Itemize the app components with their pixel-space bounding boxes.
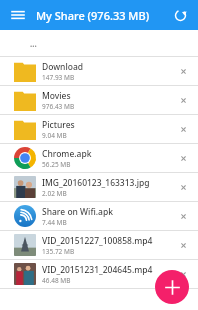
staticText: Share on Wifi.apk [42, 206, 113, 218]
staticText: 976.43 MB [42, 102, 75, 111]
button[interactable]: Open navigation drawer [6, 3, 30, 27]
staticText: 46.48 MB [42, 276, 71, 285]
staticText: Movies [42, 90, 71, 102]
staticText: Download [42, 61, 84, 73]
staticText: VID_20151227_100858.mp4 [42, 235, 153, 247]
button[interactable]: Remove Movies [171, 88, 195, 112]
staticText: 135.72 MB [42, 247, 75, 256]
staticText: 56.25 MB [42, 160, 71, 169]
button[interactable]: IMG_20160123_163313.jpg [0, 173, 198, 201]
button[interactable]: Remove Pictures [171, 117, 195, 141]
staticText: VID_20151231_204645.mp4 [42, 264, 153, 276]
button[interactable]: Remove Download [171, 59, 195, 83]
button[interactable]: Chrome.apk [0, 144, 198, 172]
button[interactable]: Share on Wifi.apk [0, 202, 198, 230]
staticText: 2.02 MB [42, 189, 67, 198]
button[interactable]: Refresh [166, 1, 194, 29]
button[interactable]: Remove VID_20151231_204645.mp4 [171, 262, 195, 286]
button[interactable]: Remove Share on Wifi.apk [171, 204, 195, 228]
button[interactable]: Remove VID_20151227_100858.mp4 [171, 233, 195, 257]
button[interactable]: Remove IMG_20160123_163313.jpg [171, 175, 195, 199]
staticText: 9.04 MB [42, 131, 67, 140]
button[interactable]: Movies [0, 86, 198, 114]
button[interactable]: Add file [155, 270, 189, 304]
staticText: ... [30, 38, 37, 49]
button[interactable]: Pictures [0, 115, 198, 143]
button[interactable]: Remove Chrome.apk [171, 146, 195, 170]
button[interactable]: Download [0, 57, 198, 85]
staticText: 7.44 MB [42, 218, 67, 227]
staticText: Pictures [42, 119, 75, 131]
button[interactable]: VID_20151231_204645.mp4 [0, 260, 198, 288]
button[interactable]: VID_20151227_100858.mp4 [0, 231, 198, 259]
staticText: IMG_20160123_163313.jpg [42, 177, 150, 189]
staticText: 147.93 MB [42, 73, 75, 82]
staticText: My Share (976.33 MB) [36, 8, 166, 23]
staticText: Chrome.apk [42, 148, 92, 160]
